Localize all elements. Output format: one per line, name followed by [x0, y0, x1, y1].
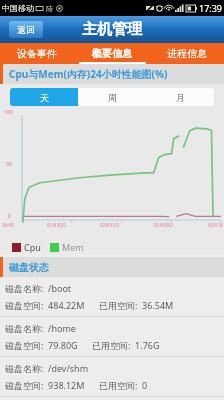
staticText: 已用空间: 0	[99, 379, 148, 391]
button[interactable]: 周	[78, 88, 146, 106]
button[interactable]: 天	[10, 88, 78, 106]
button[interactable]: 进程信息	[149, 43, 224, 64]
staticText: Cpu	[24, 241, 41, 253]
staticText: 磁盘名称: /boot	[5, 282, 72, 294]
staticText: 设备事件	[17, 47, 57, 60]
staticText: Cpu与Mem(内存)24小时性能图(%)	[9, 67, 168, 81]
button[interactable]: 概要信息	[74, 43, 149, 64]
staticText: 磁盘空间: 938.12M	[5, 379, 85, 391]
button[interactable]: 磁盘名称: /dev/shm	[0, 357, 224, 396]
staticText: 陆	[46, 4, 53, 13]
staticText: 进程信息	[167, 47, 207, 60]
staticText: Mem	[62, 241, 84, 253]
button[interactable]: 月	[146, 88, 214, 106]
staticText: 已用空间: 36.54M	[99, 299, 174, 311]
staticText: 主机管理	[82, 20, 142, 39]
staticText: 02月01日	[100, 222, 120, 228]
staticText: 0	[8, 213, 11, 220]
staticText: 月	[176, 92, 185, 103]
staticText: 17:39	[199, 2, 223, 14]
staticText: 返回	[17, 24, 35, 35]
staticText: 50	[6, 161, 12, 168]
staticText: 磁盘空间: 484.22M	[5, 299, 85, 311]
staticText: 中国移动	[2, 3, 34, 13]
staticText: 磁盘空间: 79.80G	[5, 339, 78, 351]
staticText: 概要信息	[92, 47, 132, 60]
staticText: 天	[40, 92, 49, 103]
staticText: 02月03日	[154, 222, 174, 228]
button[interactable]: 设备事件	[0, 43, 74, 64]
staticText: 磁盘状态	[9, 261, 49, 274]
staticText: 16:40	[2, 222, 14, 228]
button[interactable]: 返回	[9, 21, 43, 38]
button[interactable]: 磁盘名称: /boot	[0, 277, 224, 316]
staticText: 磁盘名称: /dev/shm	[5, 362, 89, 374]
staticText: 磁盘名称: /home	[5, 322, 76, 334]
staticText: 01月30日	[47, 222, 67, 228]
staticText: 100	[4, 109, 13, 116]
staticText: 已用空间: 1.76G	[92, 339, 160, 351]
staticText: 02月16	[208, 222, 223, 228]
staticText: 周	[108, 92, 117, 103]
button[interactable]: 磁盘名称: /home	[0, 317, 224, 356]
